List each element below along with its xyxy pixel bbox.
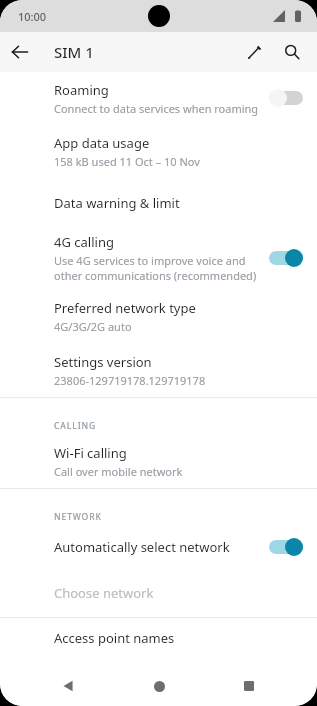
staticText: Choose network xyxy=(54,584,154,602)
staticText: 158 kB used 11 Oct – 10 Nov xyxy=(54,154,200,169)
button[interactable]: Choose network xyxy=(0,569,317,617)
staticText: other communications (recommended) xyxy=(54,268,257,283)
staticText: 4G calling xyxy=(54,233,114,251)
button[interactable]: 4G calling xyxy=(0,227,317,289)
button[interactable]: Wi-Fi calling xyxy=(0,434,317,488)
staticText: 10:00 xyxy=(18,9,47,24)
button[interactable]: Roaming xyxy=(0,72,317,124)
staticText: Automatically select network xyxy=(54,538,230,556)
staticText: NETWORK xyxy=(54,511,102,523)
button[interactable]: Home xyxy=(137,666,181,706)
staticText: Access point names xyxy=(54,629,175,647)
button[interactable]: Search xyxy=(273,33,311,71)
button[interactable]: Back xyxy=(46,666,90,706)
staticText: App data usage xyxy=(54,134,150,152)
staticText: Settings version xyxy=(54,353,152,371)
button[interactable]: Back xyxy=(0,32,40,72)
button[interactable]: Data warning & limit xyxy=(0,179,317,227)
button[interactable]: Access point names xyxy=(0,618,317,658)
button[interactable]: Edit xyxy=(235,33,273,71)
staticText: Preferred network type xyxy=(54,299,196,317)
staticText: CALLING xyxy=(54,420,97,432)
staticText: Roaming xyxy=(54,81,109,99)
staticText: Data warning & limit xyxy=(54,194,180,212)
button[interactable]: Settings version xyxy=(0,344,317,397)
button[interactable]: App data usage xyxy=(0,124,317,179)
staticText: Use 4G services to improve voice and xyxy=(54,253,246,268)
button[interactable]: Recent apps xyxy=(227,666,271,706)
staticText: Call over mobile network xyxy=(54,464,183,479)
button[interactable]: Automatically select network xyxy=(0,525,317,569)
button[interactable]: Preferred network type xyxy=(0,289,317,344)
staticText: SIM 1 xyxy=(54,42,94,62)
staticText: Wi-Fi calling xyxy=(54,444,127,462)
staticText: 23806-129719178.129719178 xyxy=(54,373,206,388)
staticText: 4G/3G/2G auto xyxy=(54,319,132,334)
staticText: Connect to data services when roaming xyxy=(54,101,259,116)
